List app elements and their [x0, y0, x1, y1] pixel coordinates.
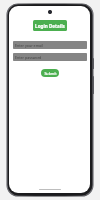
- staticText: Submit: [44, 71, 57, 76]
- button[interactable]: Login Details: [33, 20, 67, 31]
- staticText: Enter password: [15, 55, 42, 60]
- staticText: Enter your email: [15, 43, 43, 48]
- staticText: Login Details: [35, 23, 65, 29]
- button[interactable]: Enter password: [13, 53, 87, 61]
- button[interactable]: Submit: [41, 69, 59, 77]
- button[interactable]: Enter your email: [13, 41, 87, 49]
